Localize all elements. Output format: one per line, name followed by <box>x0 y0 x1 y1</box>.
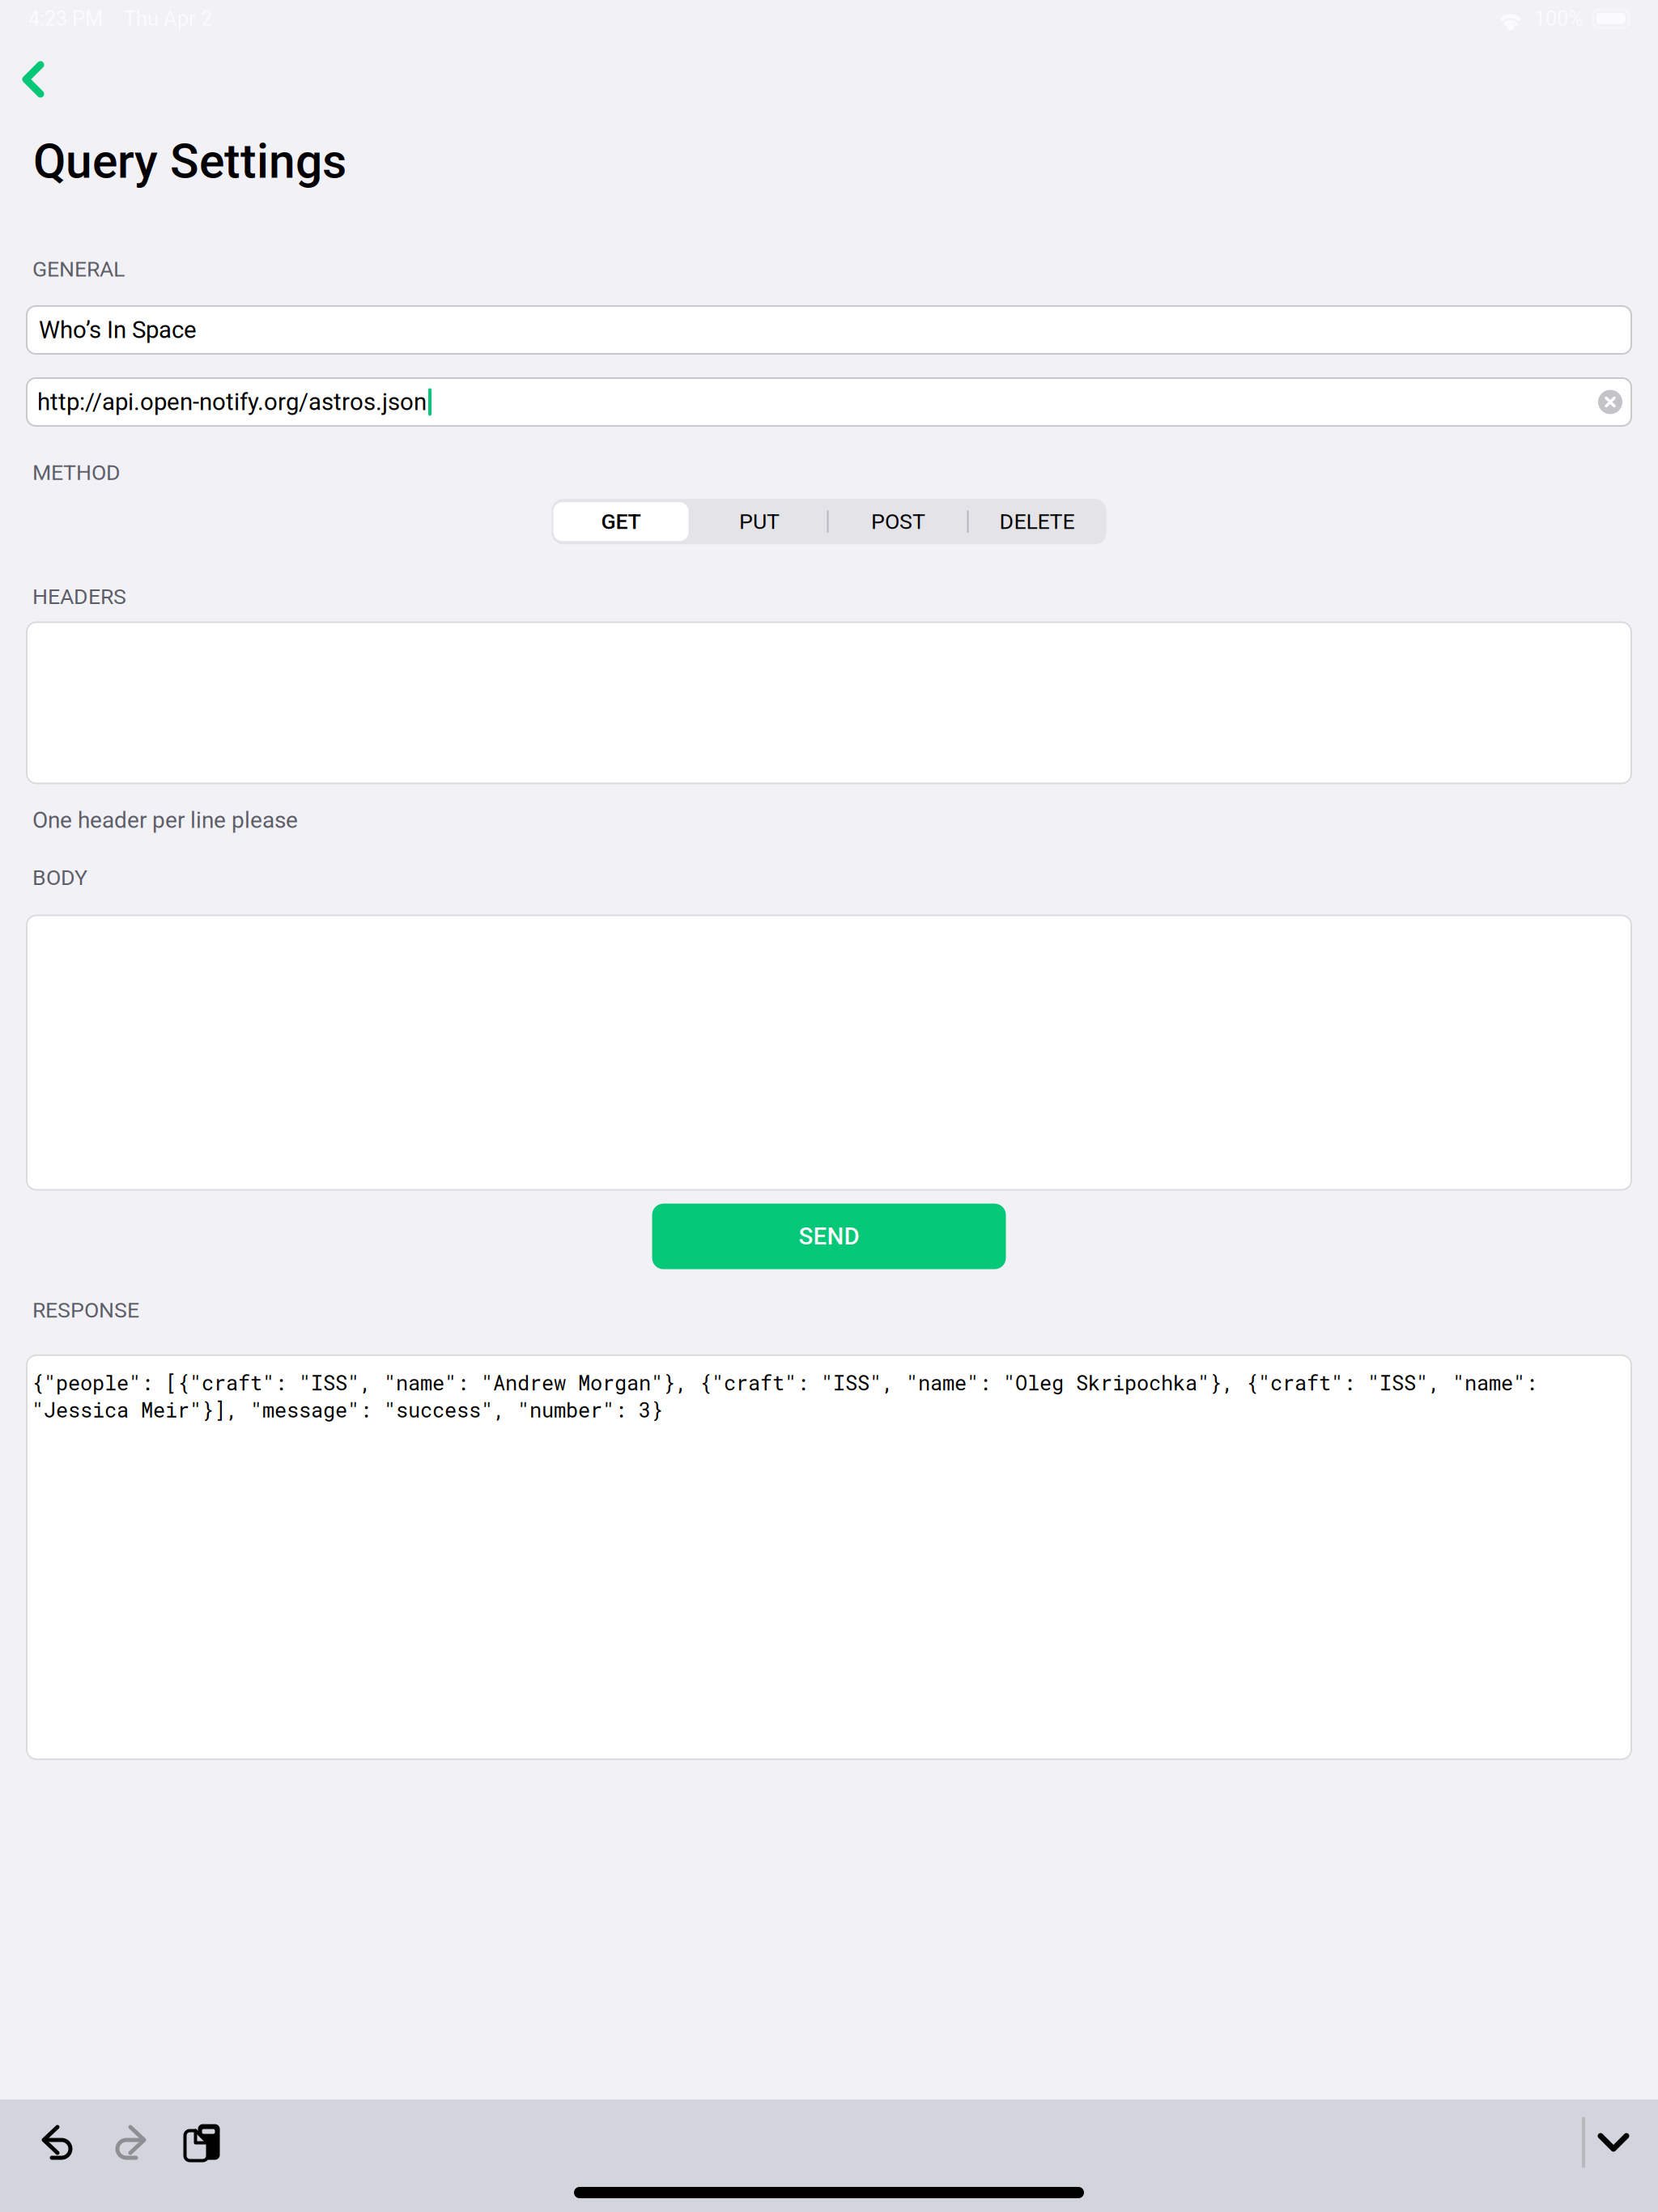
button[interactable]: Who’s In Space <box>0 306 1658 354</box>
staticText: 4:23 PM <box>28 7 103 31</box>
button[interactable]: Redo <box>96 2116 167 2169</box>
staticText: Query Settings <box>33 134 346 189</box>
staticText: GET <box>601 509 641 534</box>
button[interactable]: PUT <box>690 499 829 544</box>
button[interactable]: GET <box>552 499 690 544</box>
button[interactable]: Back <box>0 53 66 103</box>
button[interactable]: Clear text <box>1592 384 1629 420</box>
button[interactable]: SEND <box>652 1204 1006 1269</box>
staticText: BODY <box>32 865 87 890</box>
staticText: DELETE <box>999 509 1075 534</box>
staticText: http://api.open-notify.org/astros.json <box>37 388 427 416</box>
staticText: RESPONSE <box>32 1298 139 1323</box>
staticText: 100% <box>1534 7 1584 31</box>
button[interactable]: DELETE <box>968 499 1106 544</box>
staticText: "Jessica Meir"}], "message": "success", … <box>32 1396 663 1423</box>
staticText: HEADERS <box>32 584 126 609</box>
button[interactable]: Undo <box>18 2116 96 2169</box>
staticText: SEND <box>799 1223 859 1250</box>
staticText: PUT <box>739 509 780 534</box>
staticText: POST <box>871 509 925 534</box>
staticText: Who’s In Space <box>39 316 197 344</box>
staticText: {"people": [{"craft": "ISS", "name": "An… <box>32 1369 1537 1396</box>
staticText: Thu Apr 2 <box>124 7 212 31</box>
staticText: GENERAL <box>32 257 125 282</box>
button[interactable]: Hide keyboard <box>1585 2116 1642 2169</box>
button[interactable]: POST <box>829 499 968 544</box>
button[interactable]: Paste <box>167 2116 238 2169</box>
staticText: One header per line please <box>32 807 298 833</box>
staticText: METHOD <box>32 460 121 485</box>
